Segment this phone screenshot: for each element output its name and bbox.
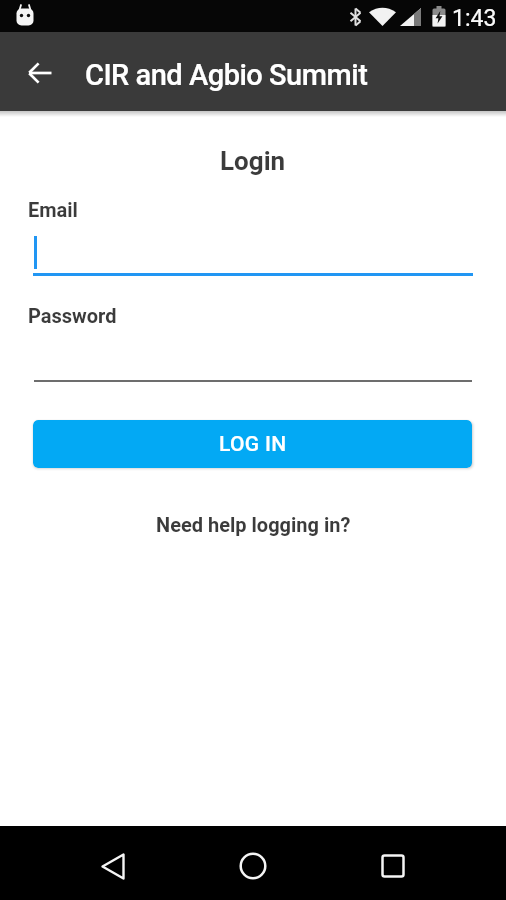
button[interactable] <box>371 844 415 888</box>
button[interactable] <box>16 49 64 97</box>
staticText: Email <box>28 198 78 221</box>
staticText: Login <box>220 146 286 176</box>
button[interactable] <box>91 844 135 888</box>
staticText: LOG IN <box>219 432 287 457</box>
button[interactable]: LOG IN <box>33 420 472 468</box>
staticText: 1:43 <box>452 5 497 32</box>
staticText: Need help logging in? <box>156 513 351 536</box>
button[interactable] <box>231 844 275 888</box>
button[interactable]: Need help logging in? <box>103 511 403 538</box>
staticText: CIR and Agbio Summit <box>85 58 368 92</box>
staticText: Password <box>28 304 117 327</box>
